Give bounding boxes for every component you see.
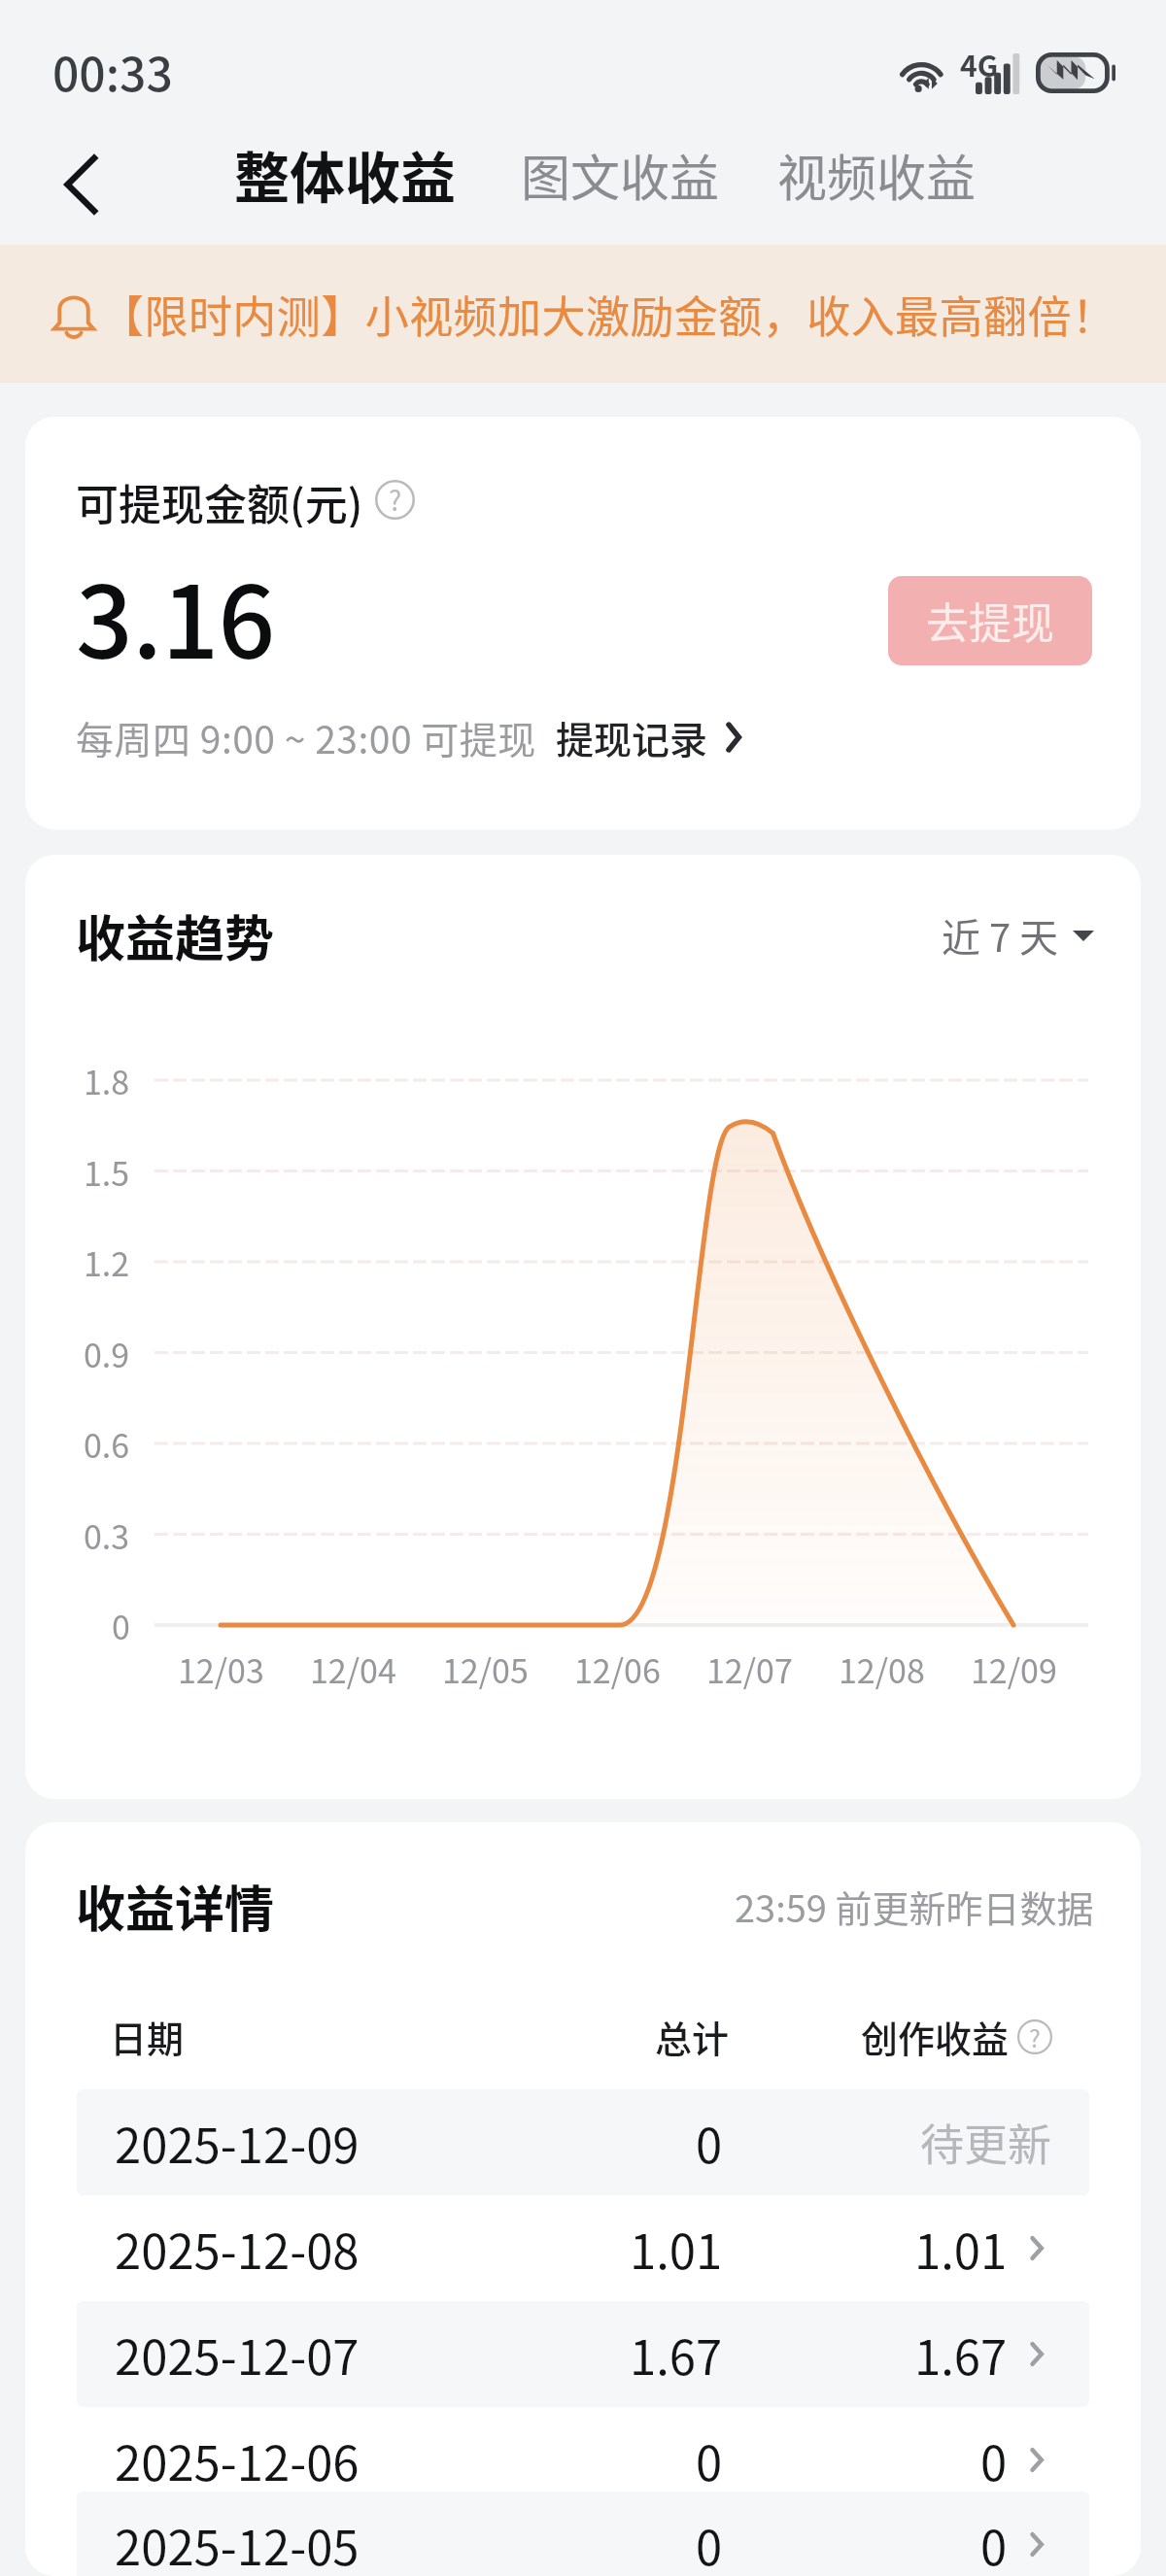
staticText: 1.67	[630, 2320, 723, 2389]
button[interactable]: 去提现	[888, 576, 1092, 665]
staticText: 【限时内测】小视频加大激励金额，收入最高翻倍！	[100, 283, 1116, 346]
staticText: 0.3	[84, 1511, 130, 1559]
staticText: 可提现金额(元)	[76, 471, 363, 527]
staticText: 23:59 前更新昨日数据	[735, 1880, 1094, 1933]
button[interactable]: Help	[375, 480, 415, 520]
button[interactable]: 【限时内测】小视频加大激励金额，收入最高翻倍！	[0, 245, 1166, 383]
staticText: 0	[696, 2108, 723, 2177]
staticText: 总计	[655, 2010, 730, 2063]
staticText: 待更新	[920, 2111, 1052, 2174]
button[interactable]: 近 7 天	[942, 907, 1094, 964]
button[interactable]: 2025-12-07	[77, 2301, 1089, 2407]
staticText: 0.9	[84, 1330, 130, 1377]
staticText: 2025-12-07	[115, 2320, 360, 2389]
staticText: 收益趋势	[76, 899, 275, 971]
staticText: 3.16	[76, 543, 275, 688]
staticText: 12/04	[310, 1645, 396, 1693]
staticText: 1.01	[914, 2214, 1008, 2283]
button[interactable]: Back	[37, 140, 126, 229]
staticText: 每周四 9:00 ~ 23:00 可提现	[76, 710, 536, 764]
staticText: 0	[696, 2510, 723, 2576]
staticText: 12/05	[442, 1645, 529, 1693]
staticText: 2025-12-06	[115, 2425, 360, 2494]
button[interactable]: 2025-12-06	[77, 2407, 1089, 2513]
staticText: 0	[980, 2425, 1008, 2494]
staticText: 2025-12-05	[115, 2510, 360, 2576]
staticText: 整体收益	[234, 134, 456, 215]
staticText: 图文收益	[521, 139, 720, 211]
staticText: 12/03	[178, 1645, 264, 1693]
staticText: 0	[980, 2510, 1008, 2576]
staticText: 2025-12-09	[115, 2108, 360, 2177]
staticText: 12/07	[706, 1645, 793, 1693]
staticText: 12/09	[971, 1645, 1057, 1693]
staticText: 12/08	[839, 1645, 925, 1693]
button[interactable]: 视频收益	[777, 139, 977, 211]
staticText: 12/06	[574, 1645, 661, 1693]
staticText: 1.67	[914, 2320, 1008, 2389]
staticText: 0	[696, 2425, 723, 2494]
staticText: 近 7 天	[942, 907, 1059, 964]
button[interactable]: 2025-12-09	[77, 2089, 1089, 2195]
staticText: 日期	[110, 2010, 185, 2063]
button[interactable]: 整体收益	[234, 134, 456, 215]
button[interactable]: 图文收益	[521, 139, 720, 211]
staticText: 00:33	[52, 37, 173, 105]
staticText: 提现记录	[556, 710, 708, 764]
staticText: 0.6	[84, 1420, 130, 1468]
staticText: ?	[1029, 2019, 1041, 2054]
staticText: ?	[389, 480, 402, 520]
staticText: 1.8	[84, 1057, 130, 1104]
button[interactable]: 2025-12-08	[77, 2195, 1089, 2301]
staticText: 创作收益	[861, 2010, 1010, 2063]
staticText: 1.5	[84, 1148, 130, 1196]
staticText: 去提现	[926, 590, 1054, 652]
button[interactable]: 2025-12-05	[77, 2491, 1089, 2576]
staticText: 4G	[960, 43, 999, 85]
staticText: 视频收益	[777, 139, 977, 211]
staticText: 2025-12-08	[115, 2214, 360, 2283]
staticText: 1.2	[84, 1238, 130, 1286]
staticText: 收益详情	[76, 1870, 275, 1942]
button[interactable]: 提现记录	[556, 710, 742, 764]
staticText: 1.01	[630, 2214, 723, 2283]
staticText: 0	[112, 1602, 130, 1649]
